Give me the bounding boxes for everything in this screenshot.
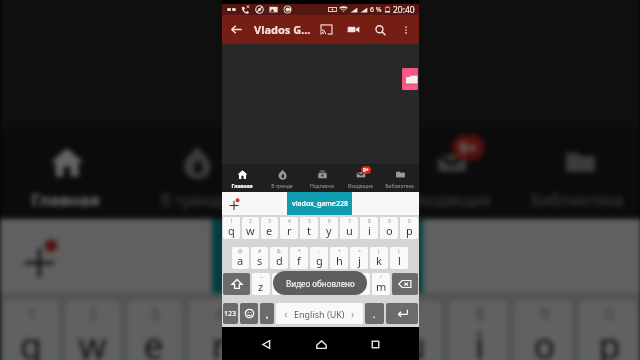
staticText: 0 [408,218,411,225]
button[interactable]: l [390,247,408,269]
staticText: ( [378,248,380,255]
staticText: : [320,274,322,281]
button[interactable]: t [300,217,318,239]
button[interactable]: k [370,247,388,269]
button[interactable]: p [579,300,637,360]
button[interactable]: Главная [222,164,262,192]
button[interactable]: More options [393,17,419,43]
button[interactable]: 9+ [387,128,514,219]
staticText: ) [398,248,400,255]
button[interactable]: q [223,217,240,239]
staticText: В тренде [271,183,293,190]
button[interactable]: d [270,247,288,269]
button[interactable]: p [400,217,418,239]
button[interactable] [223,273,250,295]
button[interactable]: s [251,247,268,269]
button[interactable]: f [290,247,308,269]
button[interactable]: , [260,303,274,324]
button[interactable]: t [254,300,312,360]
staticText: l [398,253,401,268]
staticText: f [297,253,301,268]
button[interactable]: w [65,300,121,360]
button[interactable]: Back [256,334,276,354]
button[interactable]: y [319,300,377,360]
button[interactable]: o [380,217,398,239]
button[interactable]: Back [222,15,251,44]
button[interactable]: . [365,303,384,324]
button[interactable]: i [360,217,378,239]
button[interactable]: y [320,217,338,239]
button[interactable]: 123 [223,303,238,324]
button[interactable] [386,303,418,324]
button[interactable]: j [350,247,368,269]
button[interactable]: n [352,273,370,295]
button[interactable]: z [252,273,270,295]
button[interactable]: Recents [365,334,385,354]
staticText: 6 [345,303,355,326]
button[interactable]: v [312,273,330,295]
button[interactable]: g [310,247,328,269]
button[interactable] [240,303,258,324]
button[interactable]: Search [367,17,393,43]
staticText: 1 [230,218,233,225]
staticText: q [20,320,43,360]
button[interactable]: Библиотека [514,128,640,219]
button[interactable]: Thumbnail [402,68,418,90]
staticText: Главная [231,183,253,190]
button[interactable]: Add [17,235,62,281]
staticText: n [358,279,365,294]
button[interactable]: Video camera [340,16,367,43]
staticText: 3 [150,303,160,326]
button[interactable]: c [292,273,310,295]
staticText: 8 [475,303,485,326]
staticText: d [276,253,283,268]
staticText: t [307,223,311,238]
button[interactable]: Подписки [302,164,341,192]
button[interactable]: r [189,300,247,360]
staticText: Vlados G... [254,22,311,37]
button[interactable]: Подписки [260,128,387,219]
staticText: . [373,308,376,320]
button[interactable]: w [242,217,259,239]
staticText: Главная [30,190,101,213]
staticText: Подписки [286,190,364,213]
staticText: g [316,253,323,268]
button[interactable]: m [372,273,390,295]
staticText: 5 [308,218,311,225]
button[interactable]: q [4,300,59,360]
button[interactable]: a [232,247,249,269]
staticText: z [258,279,264,294]
staticText: q [228,223,235,238]
button[interactable]: b [332,273,350,295]
button[interactable]: В тренде [262,164,302,192]
button[interactable]: i [449,300,507,360]
button[interactable] [392,273,418,295]
button[interactable]: h [330,247,348,269]
button[interactable]: ‹ [276,303,363,324]
button[interactable]: u [384,300,442,360]
staticText: 4 [215,303,225,326]
staticText: 8 [368,218,371,225]
button[interactable]: Home [311,334,331,354]
button[interactable]: Библиотека [380,164,419,192]
staticText: В тренде [160,190,231,213]
staticText: k [376,253,382,268]
button[interactable]: Главная [0,128,130,219]
staticText: t [277,320,290,360]
button[interactable]: x [272,273,290,295]
staticText: 3 [268,218,271,225]
button[interactable]: r [280,217,298,239]
button[interactable]: Cast [313,16,340,43]
button[interactable]: В тренде [130,128,260,219]
staticText: 9 [540,303,550,326]
staticText: 4 [288,218,291,225]
button[interactable]: e [261,217,278,239]
button[interactable]: o [514,300,572,360]
button[interactable]: u [340,217,358,239]
button[interactable]: Add [227,197,241,211]
button[interactable]: vladox_game228 [287,192,352,215]
button[interactable]: e [127,300,182,360]
button[interactable]: 9+ [341,164,380,192]
button[interactable]: vladox_game228 [212,219,423,294]
